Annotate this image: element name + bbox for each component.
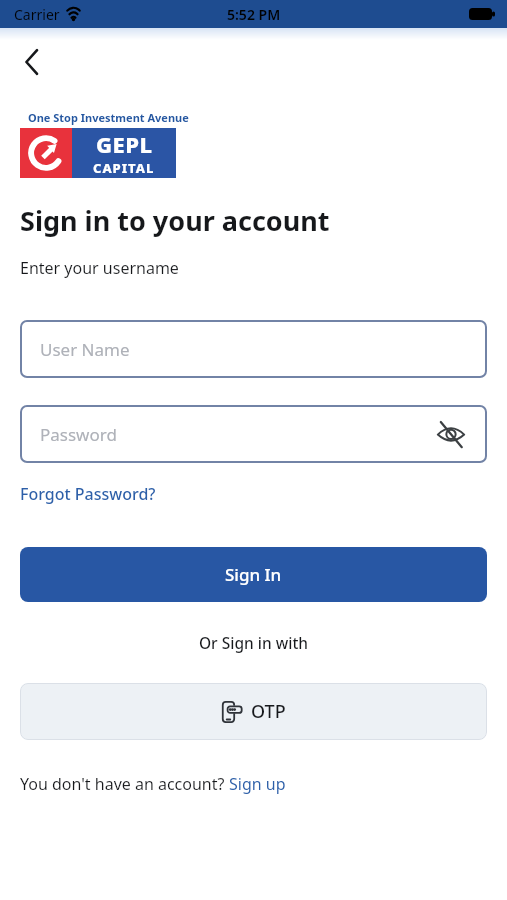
staticText: GEPL [96, 129, 153, 159]
button[interactable] [436, 419, 466, 449]
staticText: Or Sign in with [0, 632, 507, 653]
button[interactable]: Sign In [20, 547, 487, 602]
staticText: Enter your username [20, 257, 179, 279]
staticText: CAPITAL [93, 159, 155, 177]
button[interactable]: Forgot Password? [20, 483, 156, 505]
button[interactable]: User Name [20, 320, 487, 378]
button[interactable] [18, 48, 46, 76]
staticText: Password [40, 423, 117, 446]
staticText: One Stop Investment Avenue [28, 110, 189, 125]
staticText: Carrier [14, 5, 60, 24]
staticText: User Name [40, 338, 130, 361]
button[interactable]: OTP [20, 683, 487, 740]
staticText: You don't have an account? [20, 773, 229, 795]
staticText: Sign up [229, 773, 286, 795]
staticText: Sign in to your account [20, 202, 330, 239]
button[interactable]: Password [20, 405, 487, 463]
button[interactable]: You don't have an account? [20, 773, 286, 795]
staticText: Sign In [225, 563, 282, 586]
staticText: 5:52 PM [227, 5, 281, 24]
staticText: OTP [251, 699, 286, 724]
